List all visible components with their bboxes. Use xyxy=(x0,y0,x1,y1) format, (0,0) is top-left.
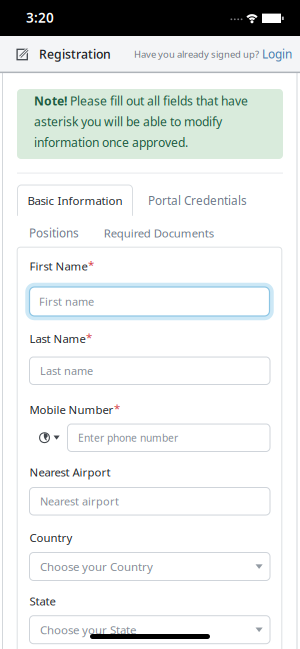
staticText: * xyxy=(88,257,94,272)
button[interactable]: Portal Credentials xyxy=(148,185,268,216)
staticText: State xyxy=(29,593,55,609)
button[interactable]: First name xyxy=(26,284,272,319)
staticText: * xyxy=(86,329,92,345)
staticText: Enter phone number xyxy=(78,431,178,445)
button[interactable]: Choose your Country xyxy=(29,552,270,580)
staticText: Positions xyxy=(29,225,79,241)
button[interactable]: Basic Information xyxy=(17,185,132,216)
button[interactable]: Choose country code xyxy=(33,424,67,451)
staticText: Last name xyxy=(40,363,93,378)
button[interactable]: Registration xyxy=(16,36,111,72)
staticText: First Name xyxy=(29,258,87,274)
staticText: 3:20 xyxy=(26,8,54,27)
button[interactable]: Have you already signed up? xyxy=(8,36,292,72)
staticText: Portal Credentials xyxy=(148,192,247,208)
staticText: Note! Please fill out all fields that ha… xyxy=(34,92,248,151)
staticText: Nearest airport xyxy=(40,494,119,509)
staticText: First name xyxy=(39,294,94,309)
staticText: * xyxy=(114,400,120,416)
staticText: Nearest Airport xyxy=(29,464,110,480)
staticText: Required Documents xyxy=(104,225,214,241)
button[interactable]: Choose your State xyxy=(29,616,270,644)
button[interactable]: Nearest airport xyxy=(29,487,270,515)
button[interactable]: Enter phone number xyxy=(67,424,270,451)
staticText: Last Name xyxy=(29,331,85,346)
staticText: Basic Information xyxy=(27,193,122,208)
button[interactable]: Last name xyxy=(29,357,270,384)
staticText: Mobile Number xyxy=(29,402,113,417)
staticText: Login xyxy=(262,46,292,62)
staticText: Registration xyxy=(39,46,111,62)
staticText: Choose your State xyxy=(40,622,136,637)
staticText: Country xyxy=(29,530,72,545)
staticText: Choose your Country xyxy=(40,559,153,574)
button[interactable]: Required Documents xyxy=(104,223,234,243)
staticText: Have you already signed up? xyxy=(134,48,259,60)
button[interactable]: Positions xyxy=(29,223,99,243)
